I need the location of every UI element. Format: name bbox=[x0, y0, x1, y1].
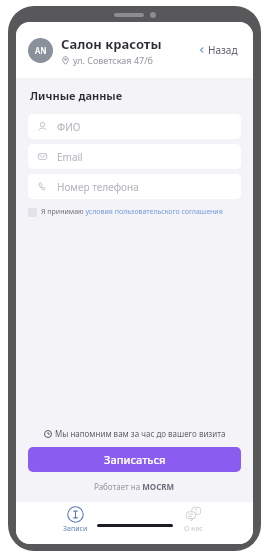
button[interactable]: Номер телефона bbox=[28, 174, 241, 199]
staticText: AN bbox=[35, 45, 47, 56]
staticText: ФИО bbox=[57, 120, 81, 134]
staticText: Салон красоты bbox=[61, 35, 162, 53]
staticText: Номер телефона bbox=[57, 180, 139, 194]
staticText: Мы напомним вам за час до вашего визита bbox=[55, 428, 226, 439]
button[interactable]: Email bbox=[28, 144, 241, 169]
staticText: Назад bbox=[208, 43, 238, 57]
staticText: Личные данные bbox=[30, 88, 123, 103]
button[interactable]: О нас bbox=[134, 502, 253, 534]
staticText: Записи bbox=[63, 524, 88, 534]
staticText: Работает на MOCRM bbox=[94, 481, 175, 492]
staticText: Email bbox=[57, 150, 83, 164]
button[interactable]: Я принимаю условия пользовательского сог… bbox=[28, 205, 241, 219]
staticText: ул. Советская 47/б bbox=[73, 54, 153, 66]
staticText: Записаться bbox=[104, 452, 166, 467]
staticText: Я принимаю условия пользовательского сог… bbox=[41, 207, 223, 217]
button[interactable]: Записаться bbox=[28, 447, 241, 472]
staticText: О нас bbox=[184, 524, 203, 534]
button[interactable]: Записи bbox=[16, 502, 134, 534]
button[interactable]: ФИО bbox=[28, 114, 241, 139]
button[interactable]: Назад bbox=[195, 39, 241, 61]
